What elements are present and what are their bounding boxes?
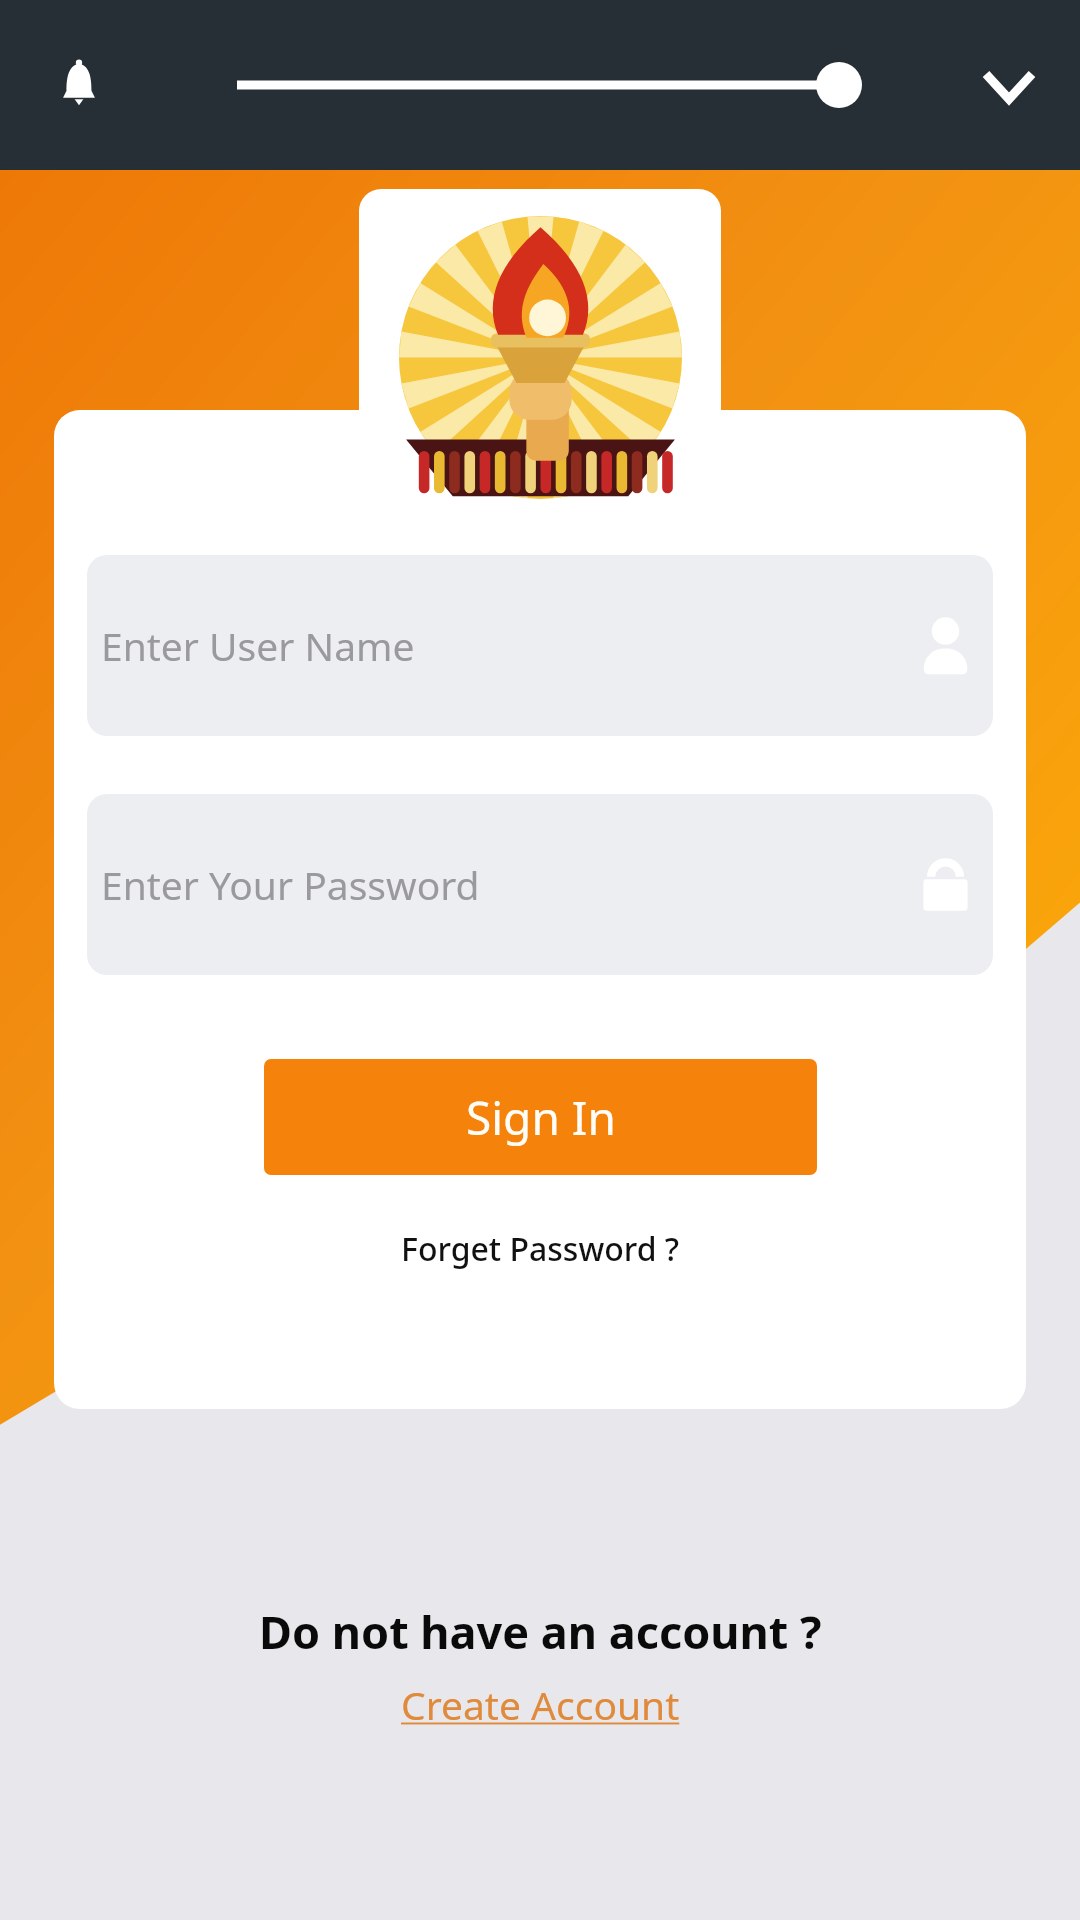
button[interactable]: Expand — [980, 56, 1038, 114]
button[interactable]: Notifications — [50, 56, 108, 114]
button[interactable]: Forget Password ? — [387, 1219, 694, 1279]
staticText: Create Account — [401, 1678, 680, 1731]
button[interactable]: Sign In — [264, 1059, 817, 1175]
staticText: Enter Your Password — [101, 858, 912, 911]
staticText: Enter User Name — [101, 619, 912, 672]
button[interactable]: Enter User Name — [87, 555, 993, 736]
staticText: Sign In — [466, 1086, 616, 1149]
button[interactable]: Create Account — [391, 1674, 690, 1735]
staticText: Do not have an account ? — [259, 1601, 822, 1662]
staticText: Forget Password ? — [401, 1227, 680, 1271]
button[interactable]: Enter Your Password — [87, 794, 993, 975]
